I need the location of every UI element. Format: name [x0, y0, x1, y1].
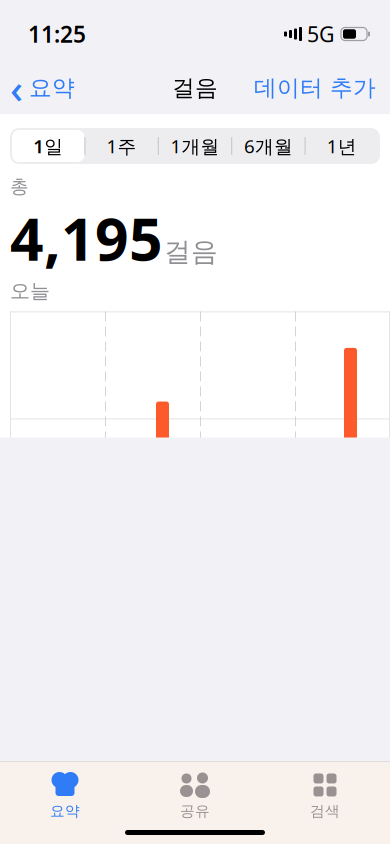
staticText: 하이라이트: [16, 773, 176, 813]
button[interactable]: 검색: [260, 770, 390, 820]
button[interactable]: 데이터 추가: [254, 68, 390, 108]
staticText: 검색: [310, 802, 340, 820]
staticText: 오늘: [10, 279, 50, 303]
staticText: 총: [10, 175, 29, 198]
button[interactable]: 1년: [306, 130, 378, 162]
staticText: 6개월: [244, 134, 293, 158]
staticText: 데이터 추가: [254, 74, 376, 102]
staticText: 모두 보기: [275, 779, 374, 807]
staticText: 요약: [50, 802, 80, 820]
staticText: 1년: [327, 134, 357, 158]
staticText: ‹: [10, 61, 23, 114]
button[interactable]: 1일: [12, 130, 84, 162]
staticText: 1일: [33, 134, 63, 158]
staticText: 5G: [307, 20, 335, 48]
button[interactable]: 1개월: [159, 130, 231, 162]
button[interactable]: 1주: [85, 130, 158, 162]
staticText: 공유: [180, 802, 210, 820]
staticText: 요약: [29, 74, 75, 102]
button[interactable]: 걸음: [13, 827, 377, 844]
staticText: 1주: [107, 134, 137, 158]
staticText: 11:25: [28, 19, 86, 49]
button[interactable]: 6개월: [232, 130, 305, 162]
staticText: 걸음: [164, 235, 218, 268]
button[interactable]: 모두 보기: [275, 775, 374, 811]
button[interactable]: 요약: [0, 770, 130, 820]
staticText: 4,195: [10, 199, 163, 277]
button[interactable]: ‹: [0, 55, 75, 120]
button[interactable]: 공유: [130, 770, 260, 820]
staticText: 1개월: [170, 134, 219, 158]
staticText: 걸음: [172, 74, 218, 102]
